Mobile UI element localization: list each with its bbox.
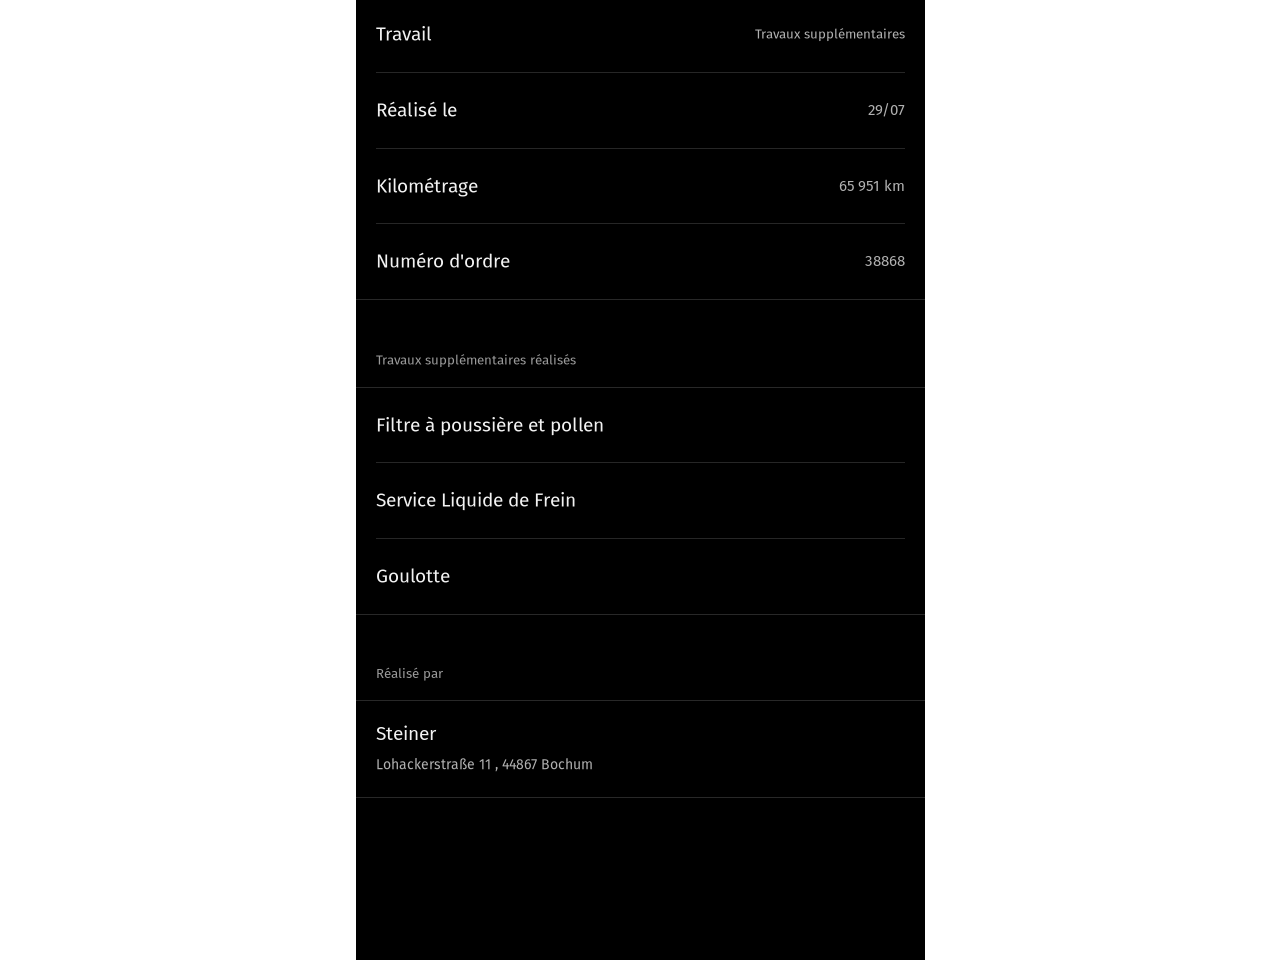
staticText: Steiner bbox=[376, 722, 436, 745]
staticText: Filtre à poussière et pollen bbox=[376, 414, 604, 436]
button[interactable]: Kilométrage bbox=[356, 148, 925, 224]
staticText: Lohackerstraße 11 , 44867 Bochum bbox=[376, 756, 593, 773]
staticText: Réalisé par bbox=[376, 665, 443, 681]
staticText: Travaux supplémentaires réalisés bbox=[376, 352, 576, 368]
button[interactable]: Goulotte bbox=[356, 538, 925, 614]
staticText: Kilométrage bbox=[376, 175, 478, 197]
button[interactable]: Steiner bbox=[356, 700, 925, 795]
button[interactable]: Filtre à poussière et pollen bbox=[356, 387, 925, 463]
staticText: 29/07 bbox=[868, 101, 905, 119]
staticText: Travail bbox=[376, 23, 432, 45]
staticText: Numéro d'ordre bbox=[376, 250, 510, 272]
button[interactable]: Réalisé le bbox=[356, 72, 925, 148]
staticText: 38868 bbox=[865, 252, 905, 270]
staticText: Travaux supplémentaires bbox=[755, 26, 905, 42]
staticText: Réalisé le bbox=[376, 99, 457, 121]
staticText: 65 951 km bbox=[839, 177, 905, 195]
button[interactable]: Travail bbox=[356, 0, 925, 72]
button[interactable]: Service Liquide de Frein bbox=[356, 462, 925, 538]
staticText: Goulotte bbox=[376, 565, 450, 587]
staticText: Service Liquide de Frein bbox=[376, 489, 576, 511]
button[interactable]: Numéro d'ordre bbox=[356, 223, 925, 299]
